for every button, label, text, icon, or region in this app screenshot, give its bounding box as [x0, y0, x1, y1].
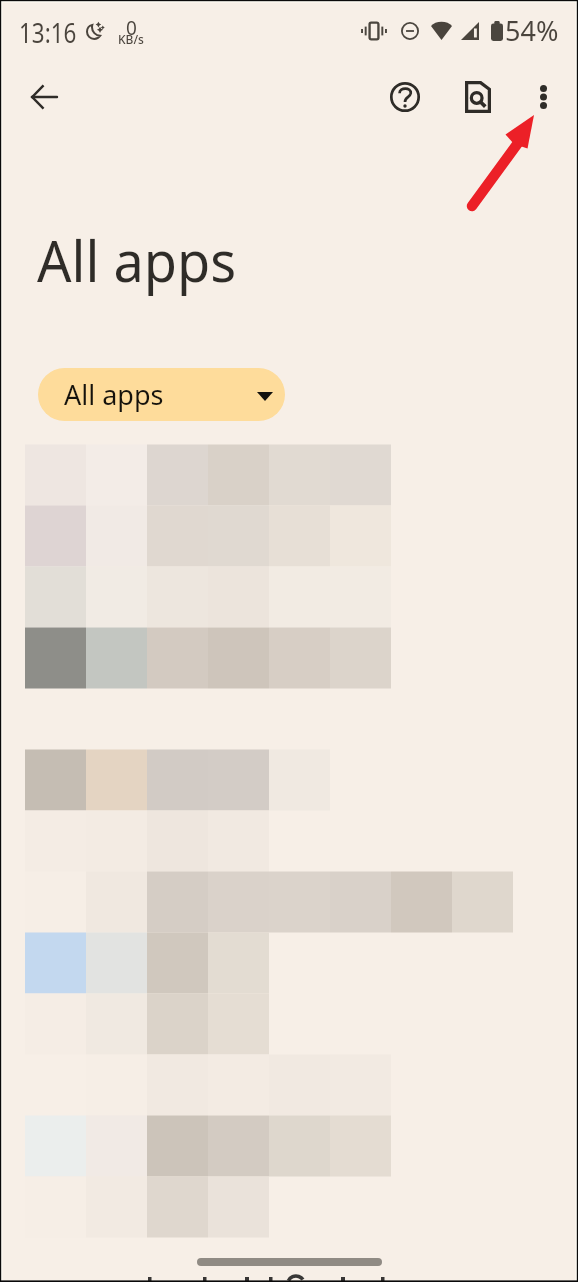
staticText: 54% [505, 12, 559, 49]
staticText: KB/s [118, 31, 144, 47]
staticText: 13:16 [19, 13, 77, 51]
button[interactable]: Back [14, 67, 74, 127]
staticText: All apps [37, 222, 237, 298]
button[interactable]: Search settings [448, 67, 508, 127]
staticText: 0 [126, 15, 137, 41]
button[interactable]: More options [513, 67, 573, 127]
button[interactable]: All apps [38, 368, 285, 421]
staticText: All apps [64, 376, 164, 413]
button[interactable]: Help [375, 67, 435, 127]
